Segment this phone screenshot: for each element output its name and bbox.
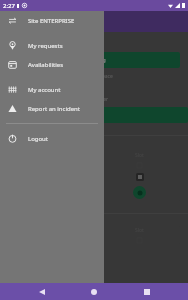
- button[interactable]: Slot: [99, 224, 180, 246]
- staticText: Slot: [135, 227, 144, 234]
- button[interactable]: Back: [31, 283, 53, 300]
- button[interactable]: Slot: [99, 148, 180, 203]
- button[interactable]: Finalize booking: [53, 52, 180, 68]
- staticText: Nicolas Altman: [10, 36, 74, 48]
- staticText: ing: [8, 85, 16, 92]
- button[interactable]: My requests: [0, 36, 104, 55]
- staticText: Parking space: [80, 73, 113, 80]
- button[interactable]: Site ENTERPRISE: [0, 11, 104, 30]
- button[interactable]: Availabilities: [0, 55, 104, 74]
- staticText: 2:27: [3, 2, 15, 10]
- staticText: My requests: [28, 42, 63, 50]
- button[interactable]: Recents: [136, 283, 158, 300]
- button[interactable]: Home: [83, 283, 105, 300]
- button[interactable]: Report an incident: [0, 99, 104, 118]
- staticText: Availabilities: [28, 61, 64, 69]
- staticText: Report an incident: [28, 105, 80, 113]
- staticText: My account: [28, 86, 61, 94]
- button[interactable]: Book: [8, 52, 43, 68]
- staticText: Logout: [28, 135, 48, 143]
- staticText: Customer: [85, 96, 109, 103]
- button[interactable]: Early booking: [46, 107, 188, 123]
- staticText: Finalize booking: [59, 56, 106, 64]
- button[interactable]: My account: [0, 80, 104, 99]
- staticText: Slot: [135, 152, 144, 159]
- button[interactable]: Book slot: [133, 186, 146, 199]
- staticText: Site ENTERPRISE: [28, 17, 75, 25]
- staticText: Book: [18, 56, 33, 64]
- button[interactable]: Logout: [0, 129, 104, 148]
